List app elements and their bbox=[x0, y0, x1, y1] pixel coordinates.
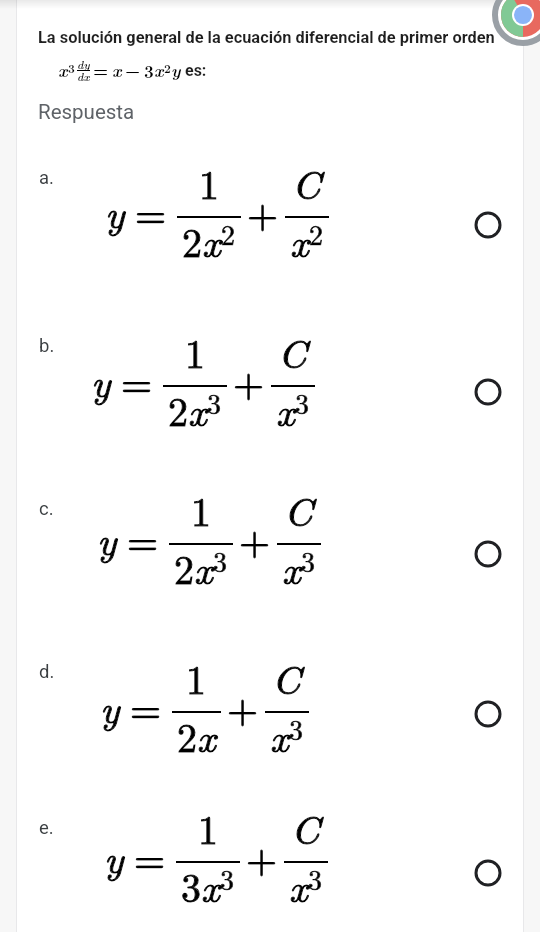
staticText: x bbox=[282, 539, 301, 596]
staticText: 1 bbox=[198, 799, 218, 856]
staticText: y bbox=[171, 58, 181, 83]
staticText: es: bbox=[185, 61, 207, 80]
staticText: 3 bbox=[295, 382, 310, 422]
staticText: 3 bbox=[289, 708, 304, 748]
staticText: La solución general de la ecuación difer… bbox=[38, 28, 495, 47]
staticText: + bbox=[246, 828, 278, 885]
staticText: 2 bbox=[182, 212, 202, 269]
button[interactable]: y bbox=[104, 776, 328, 932]
staticText: 1 bbox=[186, 649, 206, 706]
staticText: = bbox=[121, 352, 153, 409]
staticText: 2 bbox=[164, 60, 171, 77]
staticText: x bbox=[276, 381, 295, 438]
staticText: + bbox=[247, 183, 279, 240]
staticText: 3 bbox=[213, 540, 228, 580]
staticText: c. bbox=[39, 498, 54, 520]
staticText: 3 bbox=[213, 540, 228, 580]
staticText: b. bbox=[39, 335, 55, 357]
staticText: 2 bbox=[309, 213, 324, 253]
staticText: C bbox=[291, 799, 320, 856]
staticText: + bbox=[227, 678, 259, 735]
staticText: 1 bbox=[199, 154, 219, 211]
staticText: 2 bbox=[221, 213, 236, 253]
staticText: y bbox=[104, 828, 124, 885]
staticText: y bbox=[100, 678, 120, 735]
staticText: C bbox=[291, 799, 320, 856]
staticText: x bbox=[201, 857, 220, 914]
button[interactable]: y bbox=[105, 131, 329, 291]
staticText: 2 bbox=[168, 381, 188, 438]
staticText: x bbox=[289, 857, 308, 914]
button[interactable]: Seleccionar respuesta bbox=[465, 691, 511, 737]
staticText: 3 bbox=[144, 59, 154, 83]
button[interactable]: Seleccionar respuesta bbox=[465, 202, 511, 248]
staticText: x bbox=[194, 539, 213, 596]
staticText: 2 bbox=[309, 213, 324, 253]
staticText: x bbox=[270, 707, 289, 764]
staticText: x bbox=[201, 857, 220, 914]
staticText: x bbox=[289, 857, 308, 914]
staticText: y bbox=[105, 183, 125, 240]
staticText: − bbox=[125, 58, 141, 82]
staticText: C bbox=[284, 481, 313, 538]
staticText: 2 bbox=[221, 213, 236, 253]
staticText: dy bbox=[77, 56, 90, 72]
staticText: = bbox=[121, 352, 153, 409]
staticText: 2 bbox=[177, 707, 197, 764]
staticText: 1 bbox=[199, 154, 219, 211]
staticText: d. bbox=[39, 661, 55, 683]
staticText: y bbox=[104, 828, 124, 885]
button[interactable]: y bbox=[97, 458, 321, 618]
button[interactable]: Seleccionar respuesta bbox=[465, 850, 511, 896]
staticText: 3 bbox=[308, 858, 323, 898]
staticText: 3 bbox=[295, 382, 310, 422]
button[interactable]: Seleccionar respuesta bbox=[465, 369, 511, 415]
staticText: 3 bbox=[289, 708, 304, 748]
staticText: = bbox=[134, 828, 166, 885]
staticText: 2 bbox=[174, 539, 194, 596]
staticText: C bbox=[284, 481, 313, 538]
staticText: 3 bbox=[207, 382, 222, 422]
staticText: + bbox=[233, 352, 265, 409]
staticText: 1 bbox=[185, 323, 205, 380]
staticText: C bbox=[272, 649, 301, 706]
staticText: 3 bbox=[220, 858, 235, 898]
staticText: a. bbox=[39, 167, 54, 189]
staticText: y bbox=[105, 183, 125, 240]
staticText: x bbox=[202, 212, 221, 269]
staticText: 3 bbox=[181, 857, 201, 914]
button[interactable]: y bbox=[100, 626, 309, 786]
staticText: = bbox=[134, 828, 166, 885]
staticText: 3 bbox=[308, 858, 323, 898]
staticText: x bbox=[202, 212, 221, 269]
staticText: y bbox=[97, 510, 117, 567]
staticText: = bbox=[135, 183, 167, 240]
staticText: x bbox=[112, 58, 122, 83]
staticText: x bbox=[197, 707, 216, 764]
staticText: 1 bbox=[191, 481, 211, 538]
staticText: C bbox=[272, 649, 301, 706]
staticText: x bbox=[188, 381, 207, 438]
staticText: = bbox=[127, 510, 159, 567]
staticText: y bbox=[100, 678, 120, 735]
staticText: 3 bbox=[68, 60, 75, 77]
staticText: x bbox=[290, 212, 309, 269]
staticText: = bbox=[130, 678, 162, 735]
staticText: 1 bbox=[186, 649, 206, 706]
staticText: = bbox=[127, 510, 159, 567]
staticText: 1 bbox=[185, 323, 205, 380]
staticText: 2 bbox=[168, 381, 188, 438]
staticText: + bbox=[246, 828, 278, 885]
staticText: x bbox=[276, 381, 295, 438]
staticText: x bbox=[188, 381, 207, 438]
staticText: 2 bbox=[174, 539, 194, 596]
staticText: + bbox=[233, 352, 265, 409]
staticText: x bbox=[290, 212, 309, 269]
button[interactable]: y bbox=[91, 300, 315, 460]
staticText: 1 bbox=[191, 481, 211, 538]
staticText: C bbox=[278, 323, 307, 380]
staticText: 3 bbox=[207, 382, 222, 422]
staticText: x bbox=[58, 58, 68, 83]
staticText: dx bbox=[77, 68, 90, 84]
button[interactable]: Seleccionar respuesta bbox=[465, 531, 511, 577]
